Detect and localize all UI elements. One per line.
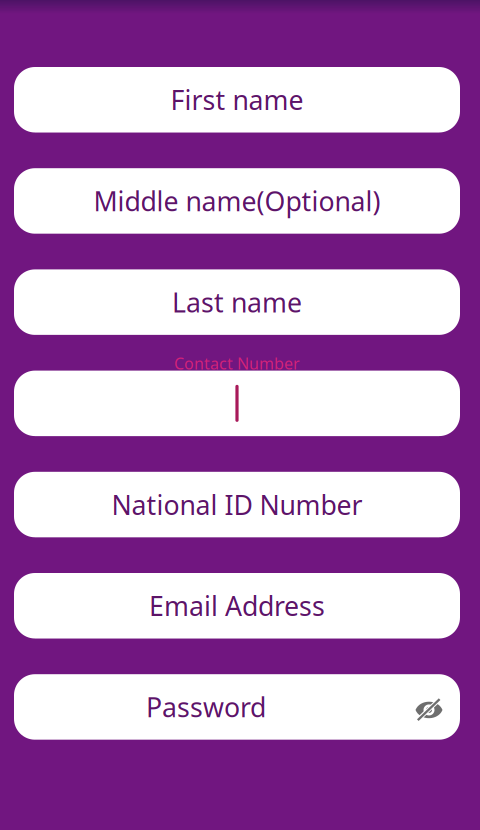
button[interactable]: Password [14, 674, 460, 740]
button[interactable]: Email Address [14, 573, 460, 638]
button[interactable]: National ID Number [14, 472, 460, 537]
button[interactable]: First name [14, 67, 460, 132]
button[interactable]: Middle name(Optional) [14, 168, 460, 234]
staticText: Middle name(Optional) [93, 183, 380, 219]
button[interactable]: Contact Number [14, 371, 460, 436]
staticText: National ID Number [111, 487, 362, 522]
staticText: Email Address [149, 588, 325, 623]
staticText: Contact Number [174, 353, 300, 374]
staticText: Last name [172, 284, 302, 320]
button[interactable]: Last name [14, 269, 460, 335]
staticText: Password [146, 689, 266, 725]
staticText: First name [170, 82, 303, 117]
